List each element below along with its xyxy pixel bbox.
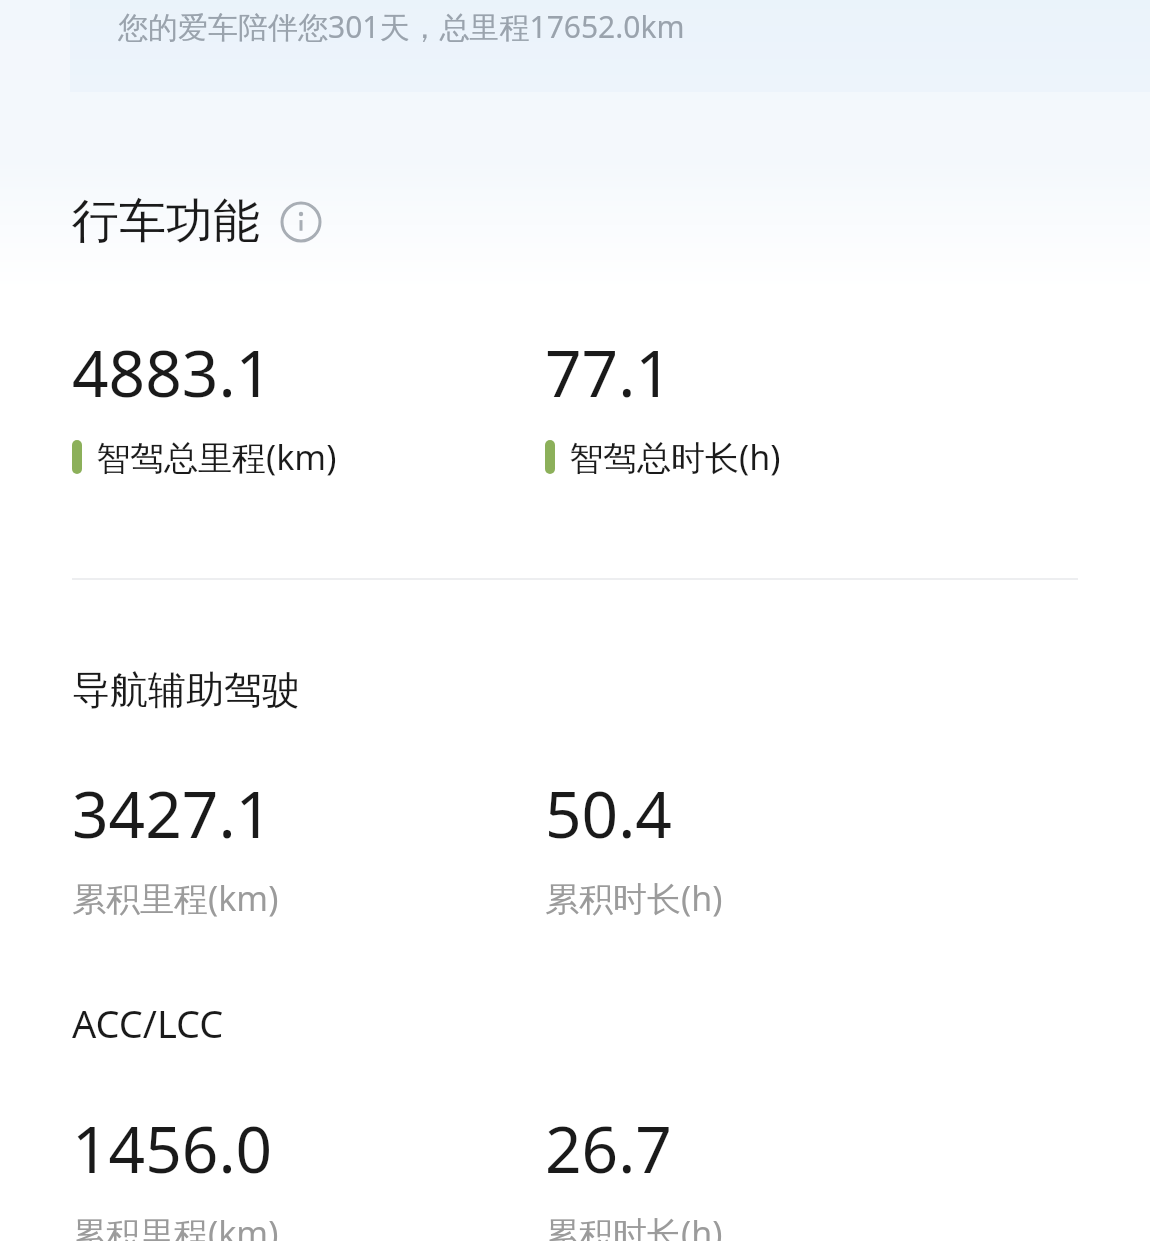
staticText: 50.4 — [545, 770, 672, 857]
staticText: 累积里程(km) — [72, 1210, 279, 1241]
button[interactable]: 1456.0 — [72, 1105, 545, 1241]
staticText: 77.1 — [545, 329, 672, 416]
button[interactable]: 行车功能 — [72, 188, 334, 255]
staticText: 4883.1 — [72, 329, 273, 416]
button[interactable]: 50.4 — [545, 770, 1018, 921]
staticText: 智驾总里程(km) — [96, 434, 337, 480]
button[interactable]: ACC/LCC — [0, 997, 1150, 1241]
button[interactable]: 3427.1 — [72, 770, 545, 921]
button[interactable]: 26.7 — [545, 1105, 1018, 1241]
button[interactable]: 导航辅助驾驶 — [0, 666, 1150, 921]
staticText: 1456.0 — [72, 1105, 273, 1192]
staticText: 累积时长(h) — [545, 1210, 723, 1241]
button[interactable]: 4883.1 — [72, 329, 545, 480]
staticText: 您的爱车陪伴您301天，总里程17652.0km — [118, 6, 685, 47]
staticText: 累积里程(km) — [72, 875, 279, 921]
staticText: 行车功能 — [72, 192, 260, 251]
button[interactable]: 信息说明 — [280, 201, 322, 243]
staticText: ACC/LCC — [72, 997, 224, 1049]
staticText: 智驾总时长(h) — [569, 434, 781, 480]
staticText: 累积时长(h) — [545, 875, 723, 921]
staticText: 导航辅助驾驶 — [72, 666, 300, 714]
button[interactable]: 77.1 — [545, 329, 1018, 480]
staticText: 26.7 — [545, 1105, 672, 1192]
staticText: 3427.1 — [72, 770, 273, 857]
